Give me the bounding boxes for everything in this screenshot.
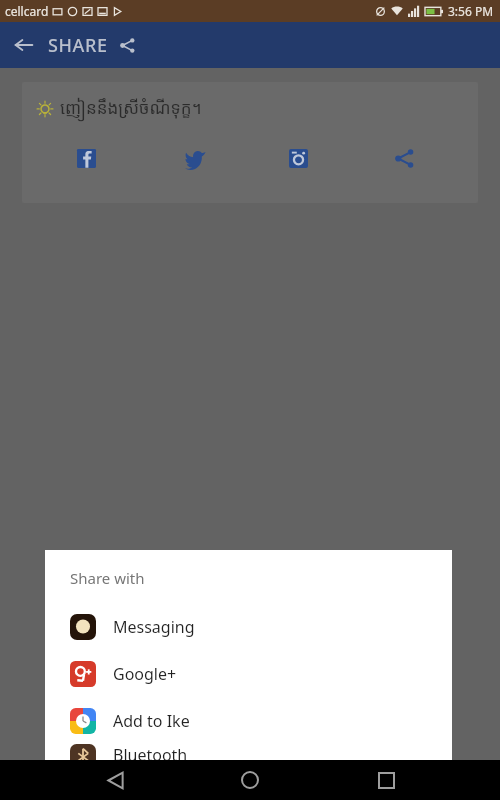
button[interactable]: Home xyxy=(229,760,271,800)
staticText: 3:56 PM xyxy=(448,3,494,19)
button[interactable]: Recents xyxy=(365,760,407,800)
staticText: Add to Ike xyxy=(113,710,190,732)
staticText: Bluetooth xyxy=(113,744,188,760)
staticText: Share with xyxy=(70,568,145,588)
button[interactable]: Back xyxy=(94,760,136,800)
button[interactable]: Add to Ike xyxy=(45,697,452,744)
staticText: Messaging xyxy=(113,616,195,638)
button[interactable]: Messaging xyxy=(45,603,452,650)
button[interactable]: Bluetooth xyxy=(45,744,452,760)
button[interactable]: Facebook xyxy=(68,140,104,176)
staticText: ញៀននឹងស្រីចំណីទុក្ខ។ xyxy=(60,96,202,119)
staticText: Google+ xyxy=(113,663,177,685)
staticText: cellcard xyxy=(5,3,49,19)
button[interactable]: Twitter xyxy=(177,140,213,176)
button[interactable]: Back xyxy=(0,22,48,68)
button[interactable]: Google+ xyxy=(45,650,452,697)
button[interactable]: Instagram xyxy=(280,140,316,176)
button[interactable]: ញៀននឹងស្រីចំណីទុក្ខ។ xyxy=(22,82,478,203)
staticText: SHARE xyxy=(48,33,108,58)
button[interactable]: Share xyxy=(115,33,139,57)
button[interactable]: Share xyxy=(386,140,422,176)
